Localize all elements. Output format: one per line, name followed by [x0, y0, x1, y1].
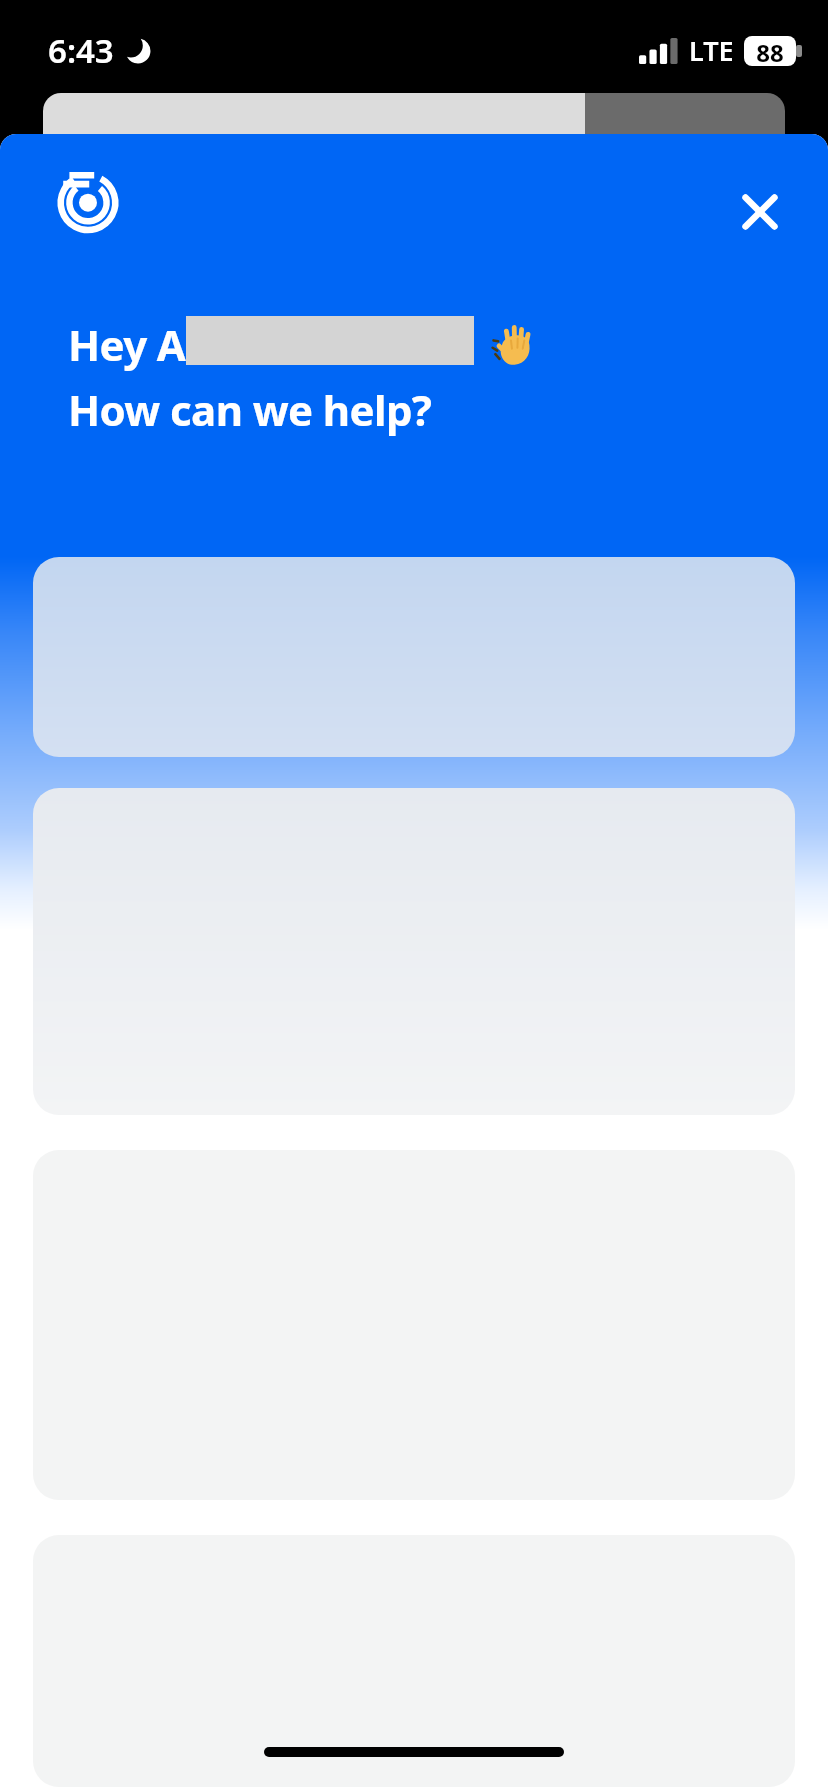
button[interactable]: Home [57, 168, 119, 230]
button[interactable] [33, 557, 795, 757]
button[interactable]: Close [722, 174, 798, 250]
button[interactable] [33, 1535, 795, 1787]
staticText: 6:43 [48, 28, 114, 73]
staticText: LTE [689, 32, 734, 69]
staticText: 88 [756, 36, 784, 66]
button[interactable] [33, 788, 795, 1115]
staticText: Hey A [68, 316, 186, 373]
staticText: How can we help? [68, 381, 432, 438]
